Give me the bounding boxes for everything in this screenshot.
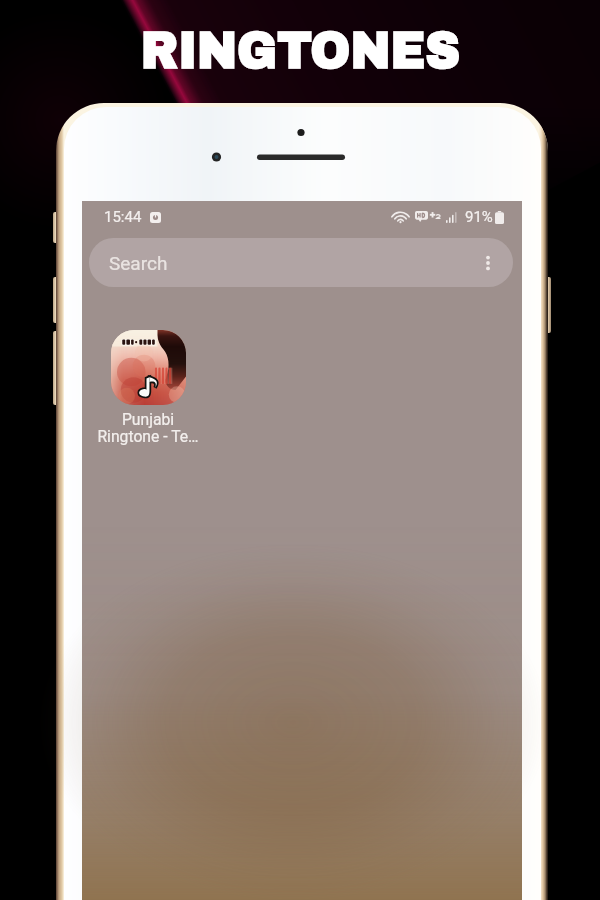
staticText: Punjabi Ringtone - Te… — [93, 410, 203, 446]
button[interactable]: Search — [89, 238, 513, 287]
staticText: 91% — [465, 208, 493, 226]
button[interactable]: Punjabi Ringtone - Te… — [93, 330, 203, 446]
button[interactable]: More options — [473, 248, 503, 278]
staticText: 15:44 — [104, 208, 142, 226]
staticText: Search — [109, 252, 168, 274]
staticText: RINGTONES — [141, 22, 460, 79]
